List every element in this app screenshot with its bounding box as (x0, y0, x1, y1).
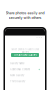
staticText: Gallery name (10, 62, 24, 65)
button[interactable]: Create New Gallery (11, 53, 39, 57)
staticText: Create New Gallery (13, 53, 36, 57)
button[interactable]: Gallery name (5, 60, 45, 66)
staticText: securely with others (8, 16, 41, 20)
staticText: New Gallery (10, 74, 24, 77)
button[interactable]: Additional Content (5, 66, 45, 72)
button[interactable]: Third Gallery (5, 78, 45, 84)
staticText: Additional Content (10, 68, 30, 71)
staticText: Share photos easily and (5, 11, 44, 15)
staticText: Select photos to add to your gallery (11, 48, 39, 53)
button[interactable]: New Gallery (5, 72, 45, 78)
staticText: Third Gallery (10, 80, 25, 83)
